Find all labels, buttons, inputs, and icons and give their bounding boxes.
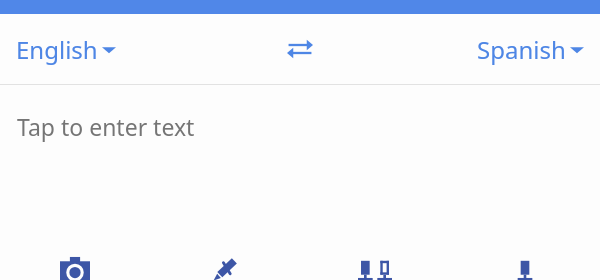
button[interactable]: Spanish — [475, 27, 586, 72]
staticText: Tap to enter text — [17, 111, 195, 142]
button[interactable]: Conversation mode — [300, 245, 450, 280]
staticText: English — [16, 33, 98, 66]
button[interactable]: Voice input — [450, 245, 600, 280]
button[interactable]: Camera input — [0, 245, 150, 280]
button[interactable]: Handwriting input — [150, 245, 300, 280]
button[interactable]: Tap to enter text — [0, 85, 600, 245]
button[interactable]: Swap languages — [278, 27, 322, 71]
staticText: Spanish — [477, 33, 566, 66]
button[interactable]: English — [14, 27, 118, 72]
